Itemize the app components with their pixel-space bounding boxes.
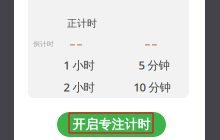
button[interactable]: 开启专注计时 [57,112,166,137]
button[interactable]: 2 小时 [49,81,109,93]
button[interactable]: 倒计时 [33,40,57,48]
staticText: 2 小时 [63,79,94,95]
button[interactable]: 1 小时 [49,59,109,71]
staticText: 倒计时 [33,40,54,48]
staticText: 开启专注计时 [72,116,150,132]
button[interactable]: 10 分钟 [122,81,182,93]
staticText: 5 分钟 [138,57,169,73]
button[interactable]: 正计时 [52,18,112,29]
staticText: 正计时 [67,17,97,30]
button[interactable]: 5 分钟 [124,59,184,71]
staticText: 10 分钟 [133,79,170,95]
staticText: 1 小时 [63,57,94,73]
